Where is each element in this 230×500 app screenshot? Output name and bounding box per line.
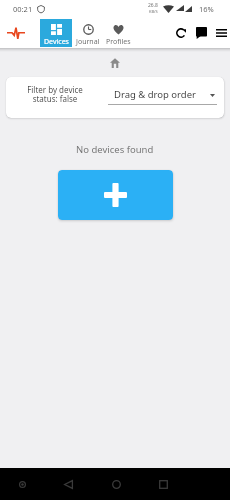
staticText: Profiles: [106, 37, 131, 47]
button[interactable]: Messages: [191, 23, 211, 43]
button[interactable]: Drag & drop order: [108, 88, 217, 105]
button[interactable]: Home: [106, 474, 126, 494]
button[interactable]: Back: [58, 474, 78, 494]
button[interactable]: Recents: [153, 474, 173, 494]
button[interactable]: Devices: [40, 19, 72, 47]
button[interactable]: Menu: [211, 23, 230, 43]
button[interactable]: Add device: [58, 170, 173, 220]
staticText: Drag & drop order: [114, 88, 196, 101]
staticText: No devices found: [76, 143, 154, 156]
button[interactable]: App logo: [4, 19, 28, 46]
staticText: 26.8: [148, 2, 158, 9]
staticText: Devices: [44, 37, 69, 47]
staticText: KB/S: [149, 9, 158, 14]
button[interactable]: Filter by device status: false: [17, 80, 92, 109]
staticText: Journal: [76, 37, 100, 47]
button[interactable]: Journal: [74, 19, 102, 47]
staticText: Filter by device status: false: [27, 84, 83, 105]
button[interactable]: Assistant: [12, 474, 32, 494]
button[interactable]: Refresh: [171, 23, 191, 43]
staticText: 00:21: [13, 4, 33, 14]
staticText: 16%: [199, 4, 214, 14]
button[interactable]: Profiles: [104, 19, 132, 47]
